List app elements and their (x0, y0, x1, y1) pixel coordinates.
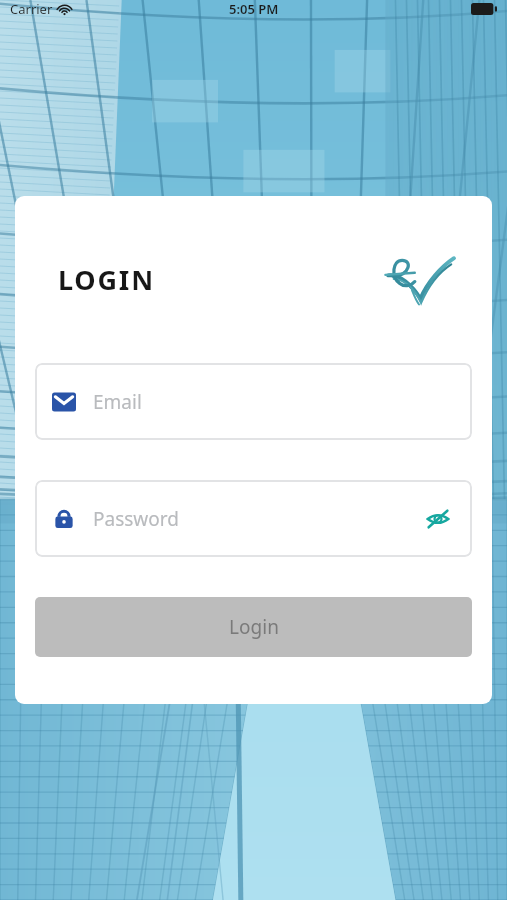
other: Company logo (384, 253, 454, 305)
staticText: LOGIN (58, 261, 155, 298)
button[interactable]: Password (35, 480, 472, 557)
staticText: Login (229, 614, 279, 640)
other: Email (52, 390, 76, 414)
button[interactable]: Login (35, 597, 472, 657)
staticText: Password (93, 506, 179, 532)
staticText: Email (93, 389, 142, 415)
button[interactable]: Toggle password visibility (421, 502, 455, 536)
staticText: 5:05 PM (229, 0, 279, 18)
other: Password (52, 507, 76, 531)
staticText: Carrier (10, 0, 53, 18)
button[interactable]: Email (35, 363, 472, 440)
